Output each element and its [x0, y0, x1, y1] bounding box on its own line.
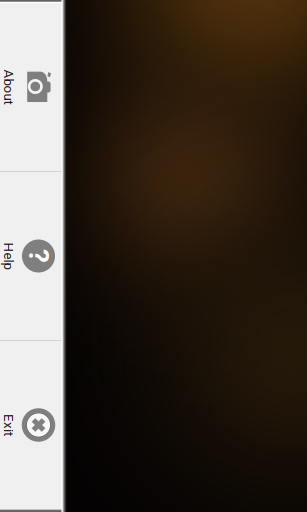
staticText: About	[0, 79, 26, 95]
staticText: Exit	[0, 417, 19, 433]
staticText: ?	[31, 240, 45, 272]
button[interactable]: Help	[0, 172, 62, 340]
button[interactable]: Exit	[0, 341, 62, 509]
staticText: Help	[0, 248, 22, 264]
button[interactable]: About	[0, 3, 62, 171]
